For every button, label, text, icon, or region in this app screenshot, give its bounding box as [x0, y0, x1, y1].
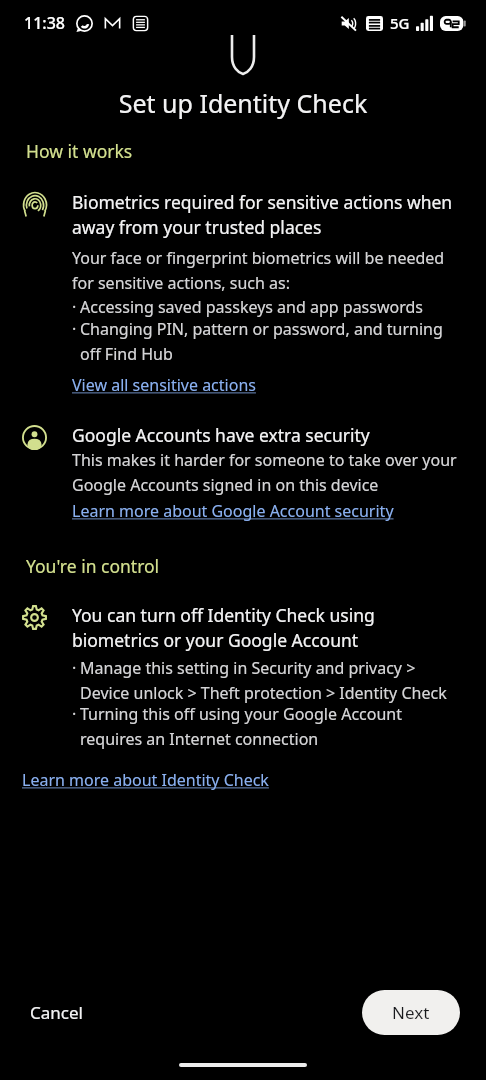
staticText: · — [72, 657, 77, 679]
button[interactable]: Learn more about Identity Check — [22, 769, 269, 791]
staticText: Learn more about Identity Check — [22, 769, 269, 791]
staticText: Accessing saved passkeys and app passwor… — [80, 296, 466, 318]
other: Ringer muted — [340, 15, 357, 32]
other: Gmail — [104, 15, 121, 32]
staticText: Changing PIN, pattern or password, and t… — [80, 318, 466, 364]
staticText: View all sensitive actions — [72, 374, 256, 396]
staticText: Next — [392, 1001, 430, 1024]
staticText: Manage this setting in Security and priv… — [80, 657, 466, 703]
staticText: · — [72, 318, 77, 340]
staticText: This makes it harder for someone to take… — [72, 449, 466, 495]
staticText: Your face or fingerprint biometrics will… — [72, 247, 466, 293]
button[interactable]: View all sensitive actions — [72, 374, 256, 396]
other: WhatsApp — [76, 15, 93, 32]
staticText: Biometrics required for sensitive action… — [72, 190, 466, 240]
staticText: · — [72, 296, 77, 318]
staticText: · — [72, 703, 77, 725]
staticText: 5G — [390, 13, 410, 33]
staticText: Google Accounts have extra security — [72, 423, 370, 447]
staticText: You can turn off Identity Check using bi… — [72, 603, 466, 653]
staticText: Cancel — [30, 1001, 83, 1024]
staticText: Set up Identity Check — [20, 86, 466, 120]
staticText: How it works — [26, 139, 460, 163]
button[interactable]: Learn more about Google Account security — [72, 500, 394, 522]
staticText: Turning this off using your Google Accou… — [80, 703, 466, 749]
other: Biometrics — [22, 192, 48, 218]
button[interactable]: Next — [362, 990, 460, 1035]
button[interactable]: Cancel — [26, 991, 87, 1034]
staticText: You're in control — [26, 554, 460, 578]
other: Settings — [22, 605, 47, 630]
other: News — [132, 15, 149, 32]
staticText: Learn more about Google Account security — [72, 500, 394, 522]
staticText: 11:38 — [24, 12, 65, 34]
other: Account — [22, 425, 47, 450]
